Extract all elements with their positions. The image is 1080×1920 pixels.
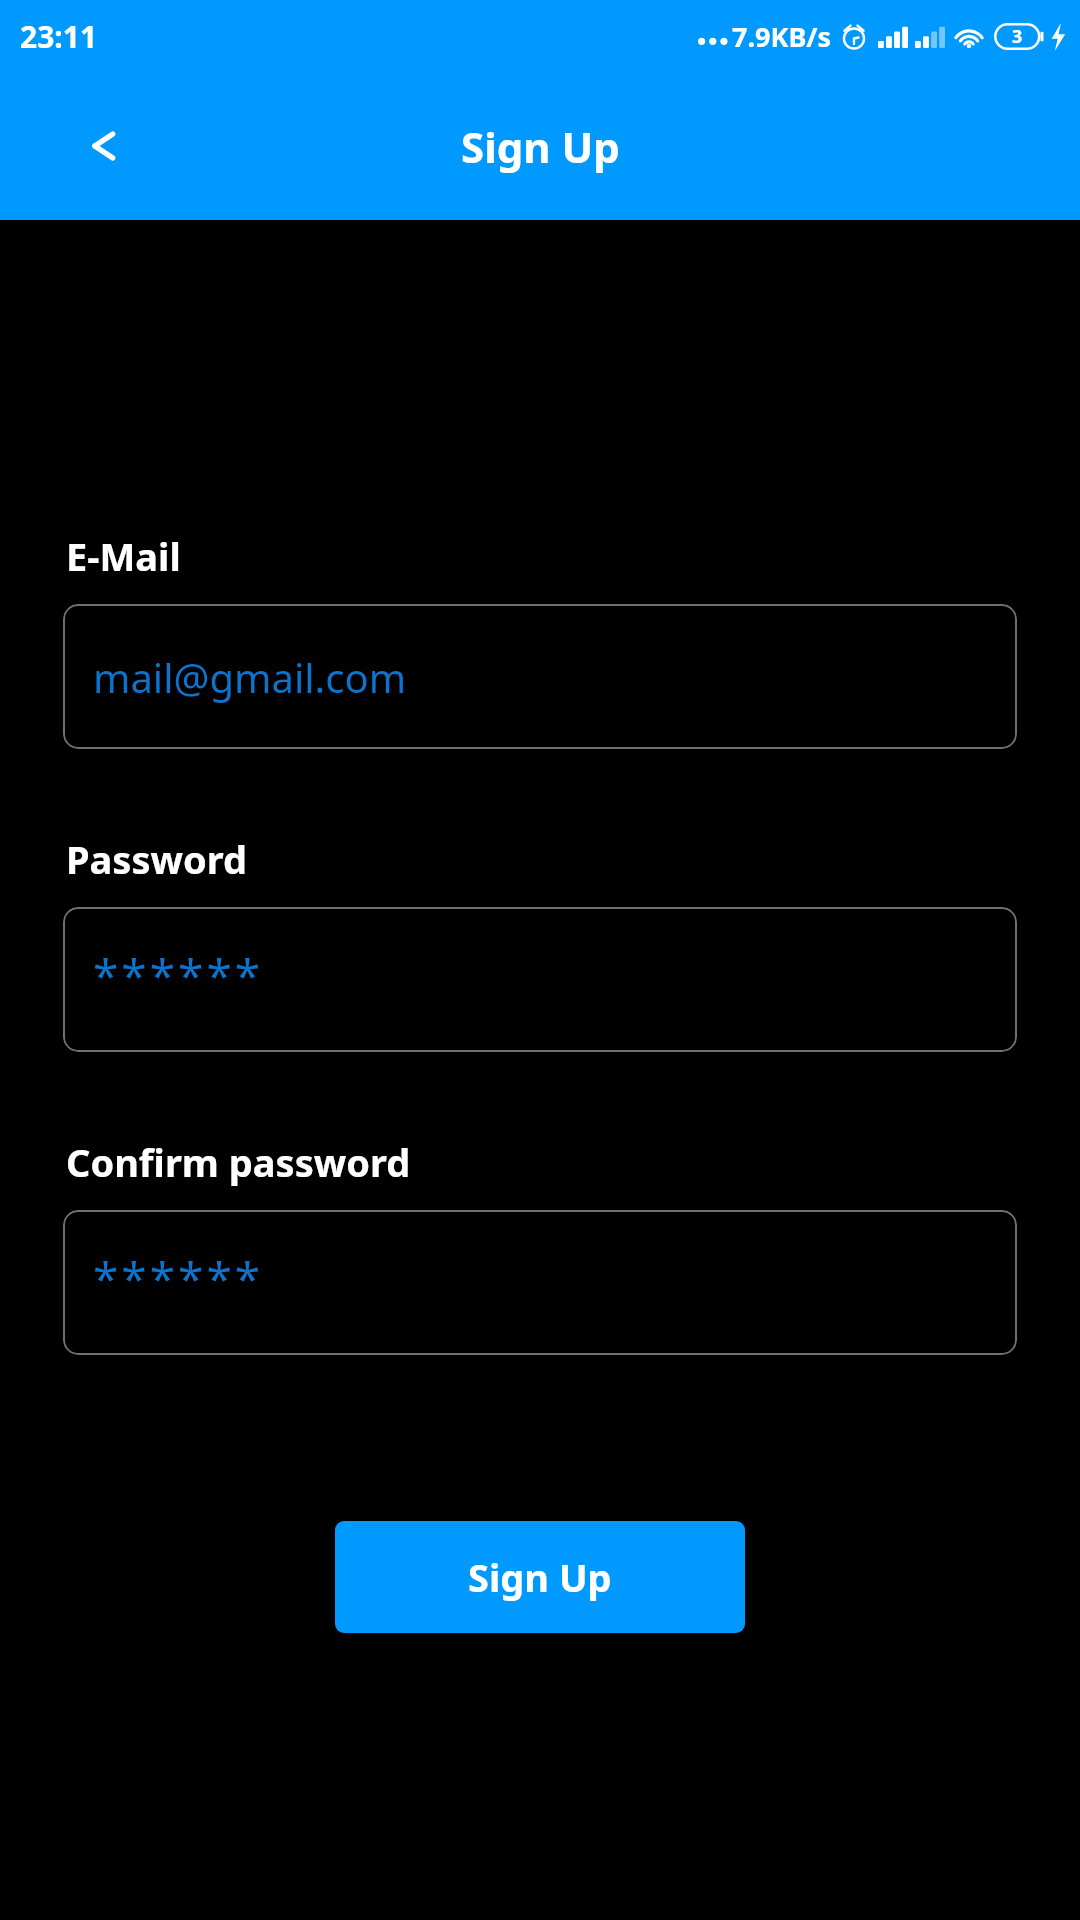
staticText: Sign Up: [461, 118, 620, 175]
button[interactable]: ******: [63, 1210, 1017, 1355]
staticText: 23:11: [20, 16, 98, 57]
staticText: Sign Up: [468, 1551, 612, 1603]
staticText: mail@gmail.com: [93, 650, 407, 704]
staticText: ******: [93, 944, 264, 1007]
staticText: Password: [66, 833, 248, 885]
button[interactable]: Sign Up: [335, 1521, 745, 1633]
staticText: E-Mail: [66, 530, 181, 582]
staticText: ******: [93, 1247, 264, 1310]
staticText: 7.9KB/s: [732, 18, 832, 55]
staticText: 3: [1012, 24, 1023, 49]
button[interactable]: ******: [63, 907, 1017, 1052]
button[interactable]: mail@gmail.com: [63, 604, 1017, 749]
staticText: Confirm password: [66, 1136, 411, 1188]
button[interactable]: Back: [78, 120, 130, 172]
